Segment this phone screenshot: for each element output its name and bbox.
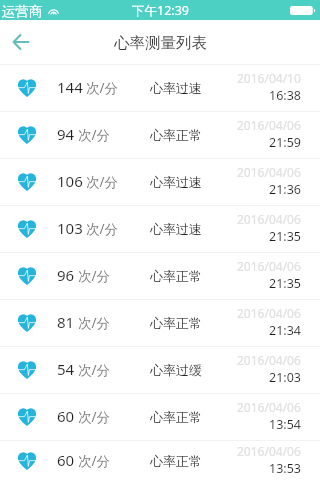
staticText: 21:36 — [269, 181, 301, 198]
staticText: 2016/04/06 — [237, 399, 301, 415]
staticText: 13:53 — [269, 460, 301, 477]
staticText: 2016/04/06 — [237, 164, 301, 180]
staticText: 心率正常 — [150, 315, 202, 331]
staticText: 心率过缓 — [150, 362, 202, 378]
staticText: 次/分 — [78, 314, 111, 332]
staticText: 次/分 — [86, 79, 119, 97]
staticText: 21:34 — [269, 322, 301, 339]
staticText: 21:35 — [269, 228, 301, 245]
staticText: 2016/04/06 — [237, 117, 301, 133]
staticText: 103 — [57, 218, 83, 238]
staticText: 次/分 — [78, 361, 111, 379]
button[interactable]: 96 — [0, 253, 320, 300]
staticText: 81 — [57, 312, 75, 332]
staticText: 60 — [57, 406, 75, 426]
staticText: 21:35 — [269, 275, 301, 292]
staticText: 心率过速 — [150, 221, 202, 237]
staticText: 心率正常 — [150, 127, 202, 143]
button[interactable]: 106 — [0, 159, 320, 206]
staticText: 2016/04/06 — [237, 258, 301, 274]
staticText: 次/分 — [86, 220, 119, 238]
staticText: 心率正常 — [150, 453, 202, 469]
button[interactable]: 60 — [0, 441, 320, 480]
staticText: 2016/04/06 — [237, 305, 301, 321]
button[interactable]: 144 — [0, 65, 320, 112]
staticText: 13:54 — [269, 416, 301, 433]
staticText: 54 — [57, 359, 75, 379]
staticText: 21:03 — [269, 369, 301, 386]
staticText: 144 — [57, 77, 83, 97]
staticText: 下午12:39 — [132, 2, 189, 19]
button[interactable]: Back — [0, 20, 42, 64]
button[interactable]: 54 — [0, 347, 320, 394]
staticText: 心率测量列表 — [114, 33, 207, 53]
staticText: 2016/04/06 — [237, 352, 301, 368]
staticText: 106 — [57, 171, 83, 191]
staticText: 94 — [57, 124, 75, 144]
staticText: 21:59 — [269, 134, 301, 151]
staticText: 2016/04/10 — [237, 70, 301, 86]
button[interactable]: 81 — [0, 300, 320, 347]
staticText: 运营商 — [2, 3, 43, 20]
staticText: 96 — [57, 265, 75, 285]
staticText: 心率过速 — [150, 80, 202, 96]
staticText: 60 — [57, 450, 75, 470]
staticText: 次/分 — [78, 452, 111, 470]
staticText: 2016/04/06 — [237, 443, 301, 459]
staticText: 心率过速 — [150, 174, 202, 190]
button[interactable]: 60 — [0, 394, 320, 441]
button[interactable]: 103 — [0, 206, 320, 253]
button[interactable]: 94 — [0, 112, 320, 159]
staticText: 2016/04/06 — [237, 211, 301, 227]
staticText: 次/分 — [78, 267, 111, 285]
staticText: 心率正常 — [150, 409, 202, 425]
staticText: 次/分 — [86, 173, 119, 191]
staticText: 心率正常 — [150, 268, 202, 284]
staticText: 次/分 — [78, 408, 111, 426]
staticText: 次/分 — [78, 126, 111, 144]
staticText: 16:38 — [269, 87, 301, 104]
